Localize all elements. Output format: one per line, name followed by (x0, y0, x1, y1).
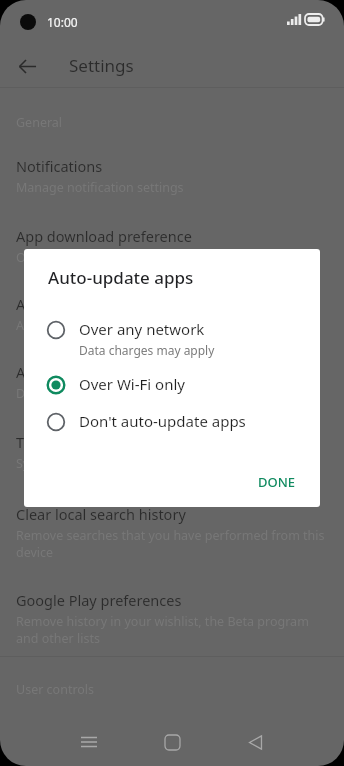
button[interactable]: Over Wi-Fi only (24, 366, 320, 403)
staticText: Do not auto-play videos (16, 385, 156, 402)
staticText: Auto-update apps (48, 266, 194, 289)
button[interactable]: Over any network (24, 311, 320, 366)
staticText: Settings (69, 54, 134, 77)
button[interactable]: DONE (246, 467, 308, 497)
button[interactable]: Back (13, 52, 41, 80)
button[interactable]: Theme (0, 432, 344, 472)
button[interactable]: Recent apps (75, 728, 103, 756)
button[interactable]: Don't auto-update apps (24, 403, 320, 440)
button[interactable]: Auto-play videos (0, 362, 344, 402)
staticText: System default (16, 455, 104, 472)
button[interactable]: Google Play preferences (0, 590, 344, 646)
staticText: Notifications (16, 156, 103, 176)
button[interactable]: Home (158, 728, 186, 756)
staticText: Remove searches that you have performed … (16, 527, 325, 560)
staticText: Remove history in your wishlist, the Bet… (16, 613, 309, 646)
button[interactable]: Back (241, 728, 269, 756)
staticText: General (16, 114, 63, 131)
staticText: Over Wi-Fi only (16, 249, 105, 266)
staticText: DONE (258, 473, 296, 491)
button[interactable]: Auto-update apps (0, 294, 344, 334)
staticText: 10:00 (47, 14, 78, 30)
staticText: Over any network (79, 319, 205, 339)
button[interactable]: Clear local search history (0, 504, 344, 560)
staticText: Google Play preferences (16, 590, 182, 610)
button[interactable]: App download preference (0, 226, 344, 266)
staticText: Data charges may apply (79, 342, 215, 358)
staticText: App download preference (16, 226, 192, 246)
staticText: Auto-play videos (16, 362, 129, 382)
staticText: Auto-update apps over Wi-Fi only (16, 317, 211, 334)
staticText: Auto-update apps (16, 294, 138, 314)
staticText: Clear local search history (16, 504, 186, 524)
staticText: Manage notification settings (16, 179, 184, 196)
staticText: Theme (16, 432, 63, 452)
staticText: Don't auto-update apps (79, 411, 246, 431)
button[interactable]: Notifications (0, 156, 344, 196)
staticText: User controls (16, 681, 95, 698)
staticText: Over Wi-Fi only (79, 374, 185, 394)
